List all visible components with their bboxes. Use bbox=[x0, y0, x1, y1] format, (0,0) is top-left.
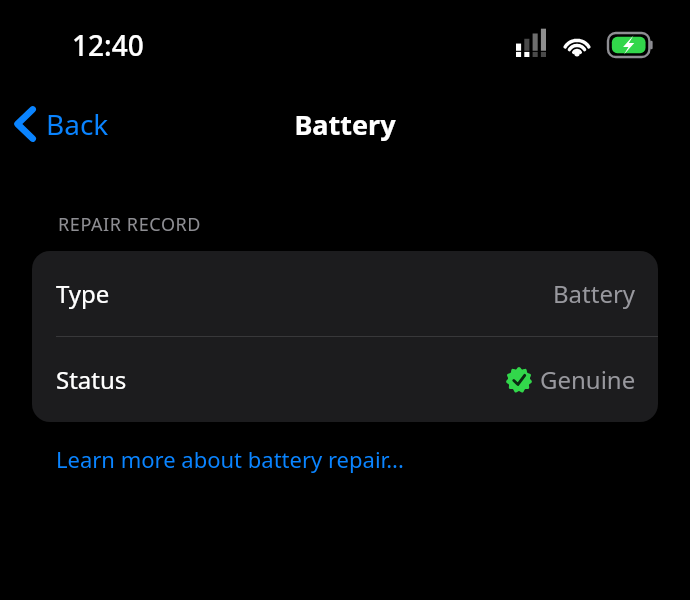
button[interactable]: Type bbox=[32, 251, 658, 336]
staticText: Type bbox=[56, 277, 110, 310]
staticText: Genuine bbox=[540, 363, 636, 396]
other: Back bbox=[14, 107, 36, 141]
staticText: Learn more about battery repair... bbox=[56, 444, 404, 474]
staticText: Status bbox=[56, 363, 127, 396]
staticText: Battery bbox=[294, 106, 396, 143]
button[interactable]: Status bbox=[32, 337, 658, 422]
button[interactable]: Back bbox=[0, 99, 121, 149]
staticText: Back bbox=[46, 105, 109, 143]
button[interactable]: Learn more about battery repair... bbox=[32, 440, 412, 478]
staticText: REPAIR RECORD bbox=[58, 212, 202, 237]
staticText: Battery bbox=[553, 277, 636, 310]
staticText: 12:40 bbox=[72, 26, 144, 64]
